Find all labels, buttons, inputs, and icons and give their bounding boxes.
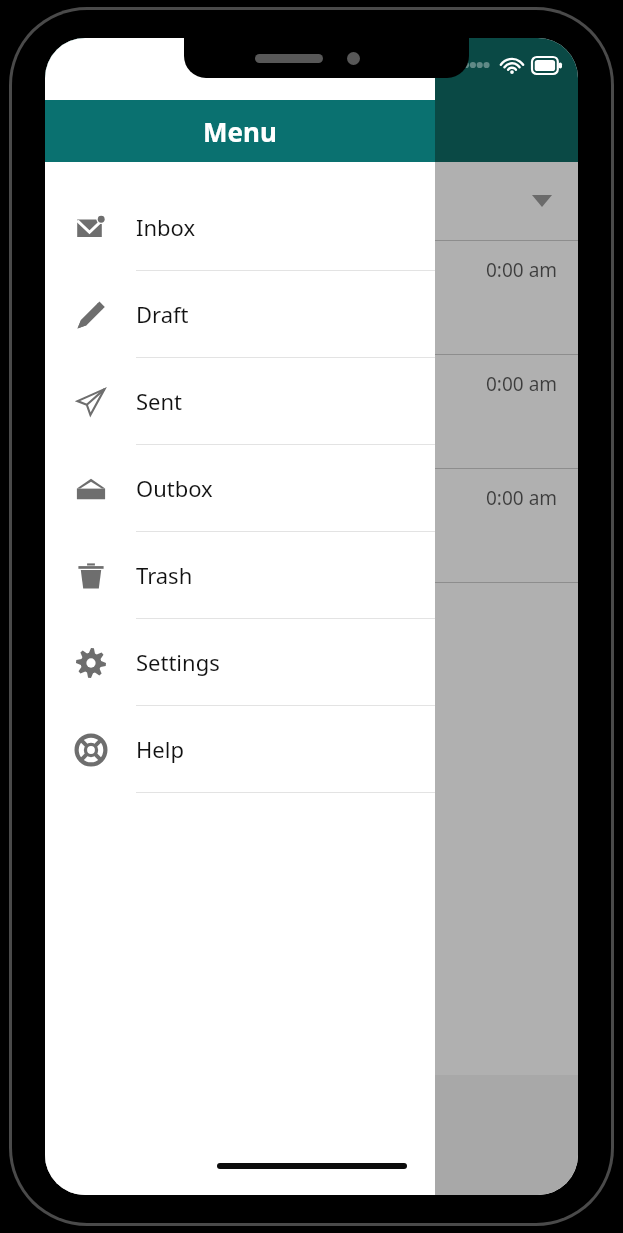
staticText: Hello!	[53, 284, 107, 311]
button[interactable]: 0:00 am	[45, 469, 578, 582]
staticText: Menu	[203, 114, 277, 149]
button[interactable]: 0:00 am	[45, 241, 578, 354]
staticText: Settings	[136, 647, 220, 677]
staticText: Sent	[136, 386, 183, 416]
staticText: Help	[136, 734, 184, 764]
staticText: na Cat to Lov...	[49, 540, 180, 566]
staticText: Trash	[136, 560, 193, 590]
button[interactable]: Trash	[45, 532, 435, 619]
button[interactable]: Sent	[45, 358, 435, 445]
staticText: 0:00 am	[486, 257, 558, 283]
staticText: 0:00 am	[486, 371, 558, 397]
staticText: Inbox	[136, 212, 196, 242]
button[interactable]: 0:00 am	[45, 355, 578, 468]
staticText: Outbox	[136, 473, 213, 503]
button[interactable]: Settings	[45, 619, 435, 706]
button[interactable]: Help	[45, 706, 435, 793]
button[interactable]: Outbox	[45, 445, 435, 532]
button[interactable]: Draft	[45, 271, 435, 358]
staticText: 0:00 am	[486, 485, 558, 511]
staticText: Draft	[136, 299, 189, 329]
button[interactable]: Inbox	[45, 184, 435, 271]
staticText: Hello!	[53, 398, 107, 425]
